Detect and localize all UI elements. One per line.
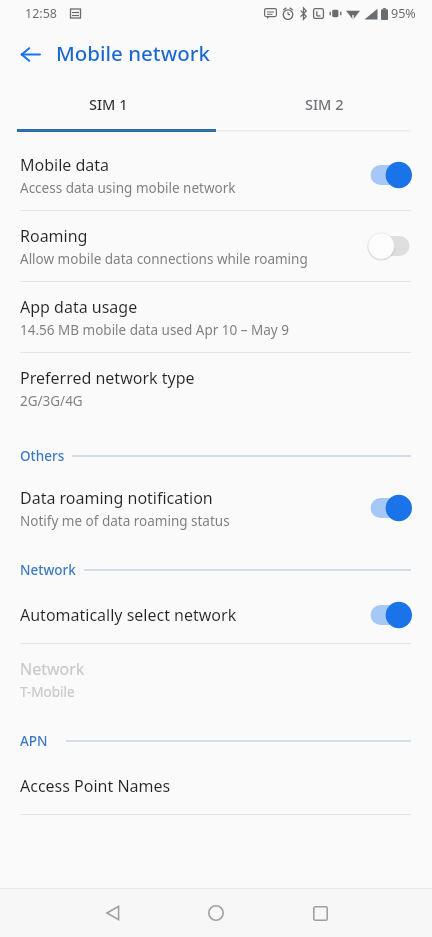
button[interactable]: Back bbox=[89, 889, 137, 937]
staticText: Network bbox=[20, 561, 76, 579]
staticText: Access Point Names bbox=[20, 775, 171, 797]
staticText: Data roaming notification bbox=[20, 487, 213, 509]
staticText: 14.56 MB mobile data used Apr 10 – May 9 bbox=[20, 321, 289, 339]
staticText: App data usage bbox=[20, 296, 138, 318]
button[interactable]: Data roaming notification on bbox=[362, 488, 418, 528]
button[interactable]: Access Point Names bbox=[0, 758, 432, 814]
button[interactable]: SIM 2 bbox=[216, 82, 432, 132]
staticText: Access data using mobile network bbox=[20, 179, 236, 197]
staticText: Roaming bbox=[20, 225, 88, 247]
staticText: Allow mobile data connections while roam… bbox=[20, 250, 308, 268]
staticText: 2G/3G/4G bbox=[20, 392, 83, 410]
staticText: SIM 2 bbox=[305, 94, 344, 114]
button[interactable]: Automatically select network bbox=[0, 587, 432, 643]
button[interactable]: Roaming off bbox=[362, 226, 418, 266]
button[interactable]: App data usage bbox=[0, 282, 432, 352]
button[interactable]: Back bbox=[8, 32, 52, 76]
staticText: Others bbox=[20, 447, 65, 465]
button[interactable]: Recents bbox=[296, 889, 344, 937]
button[interactable]: Roaming bbox=[0, 211, 432, 281]
button[interactable]: Preferred network type bbox=[0, 353, 432, 423]
staticText: 95% bbox=[391, 5, 416, 22]
staticText: Network bbox=[20, 658, 85, 680]
button[interactable]: Network bbox=[0, 644, 432, 714]
staticText: Preferred network type bbox=[20, 367, 195, 389]
button[interactable]: Mobile data on bbox=[362, 155, 418, 195]
staticText: Notify me of data roaming status bbox=[20, 512, 230, 530]
button[interactable]: SIM 1 bbox=[0, 82, 216, 132]
staticText: SIM 1 bbox=[89, 94, 128, 114]
button[interactable]: Mobile data bbox=[0, 140, 432, 210]
staticText: T-Mobile bbox=[20, 683, 75, 701]
staticText: Mobile network bbox=[56, 39, 210, 67]
button[interactable]: Home bbox=[192, 889, 240, 937]
button[interactable]: Automatically select network on bbox=[362, 595, 418, 635]
staticText: Automatically select network bbox=[20, 604, 237, 626]
button[interactable]: Data roaming notification bbox=[0, 473, 432, 543]
staticText: 12:58 bbox=[25, 5, 57, 22]
staticText: APN bbox=[20, 732, 48, 750]
staticText: Mobile data bbox=[20, 154, 110, 176]
